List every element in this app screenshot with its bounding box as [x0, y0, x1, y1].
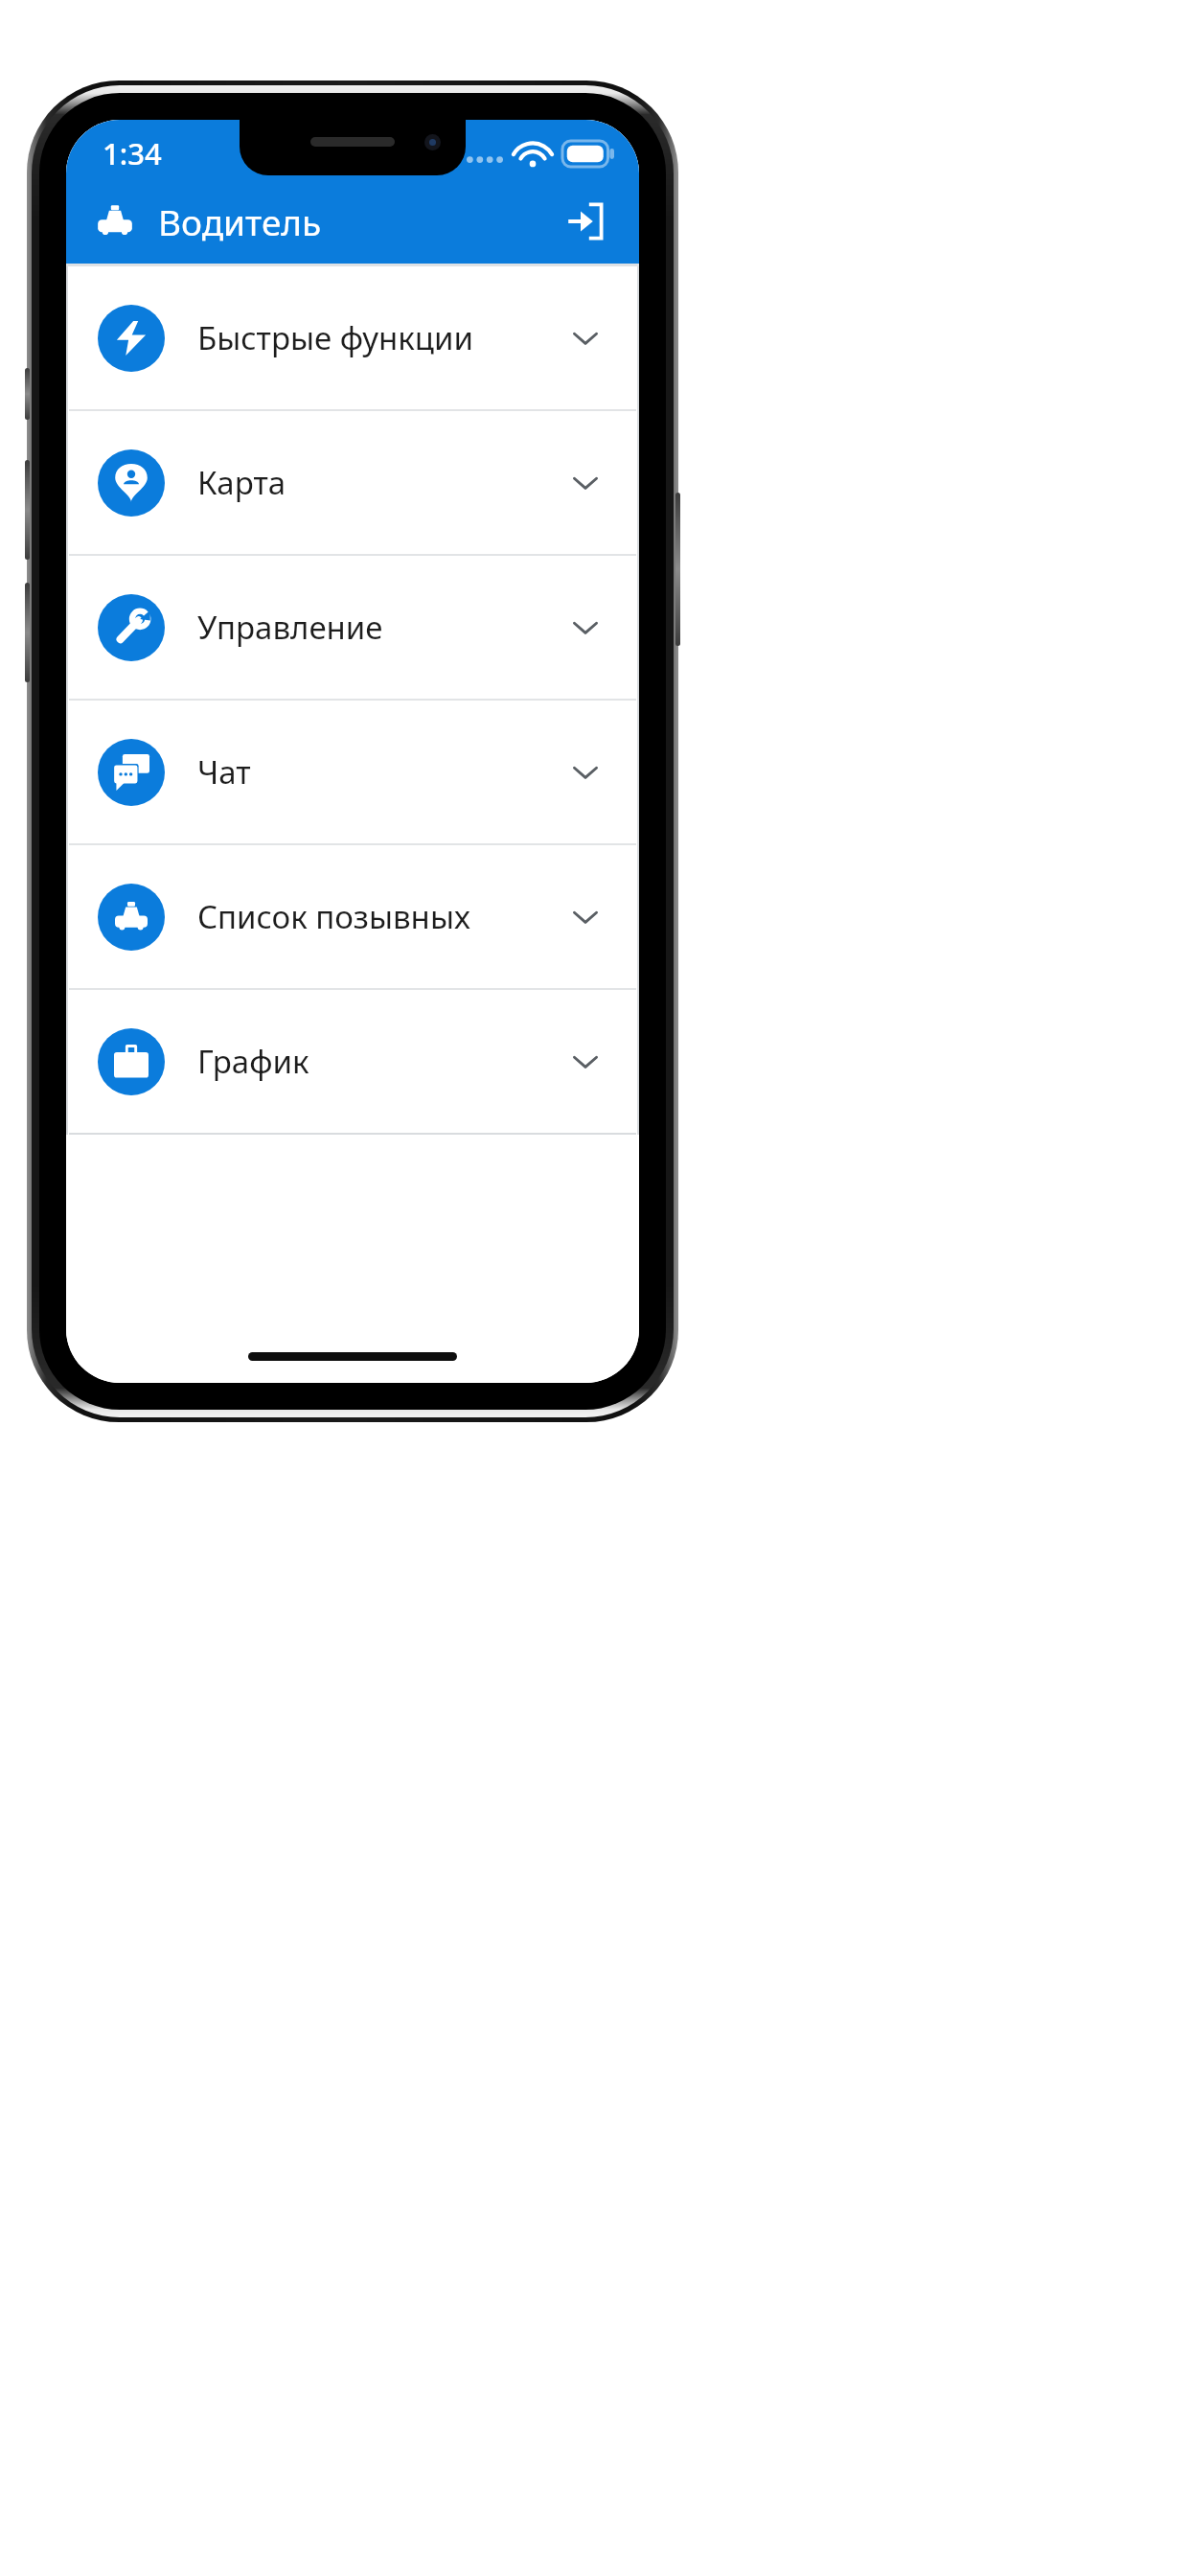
button[interactable]: Чат [69, 701, 636, 843]
staticText: Список позывных [197, 895, 470, 938]
button[interactable]: Управление [69, 556, 636, 699]
staticText: Быстрые функции [197, 316, 473, 359]
button[interactable]: Log out [555, 192, 614, 251]
staticText: График [197, 1040, 309, 1083]
button[interactable]: Быстрые функции [69, 266, 636, 409]
button[interactable]: Список позывных [69, 845, 636, 988]
staticText: Чат [197, 750, 251, 793]
staticText: Карта [197, 461, 286, 504]
staticText: 1:34 [103, 133, 162, 173]
staticText: Водитель [158, 197, 322, 245]
button[interactable]: Карта [69, 411, 636, 554]
button[interactable]: График [69, 990, 636, 1133]
button[interactable]: Driver [93, 199, 137, 243]
staticText: Управление [197, 606, 383, 649]
